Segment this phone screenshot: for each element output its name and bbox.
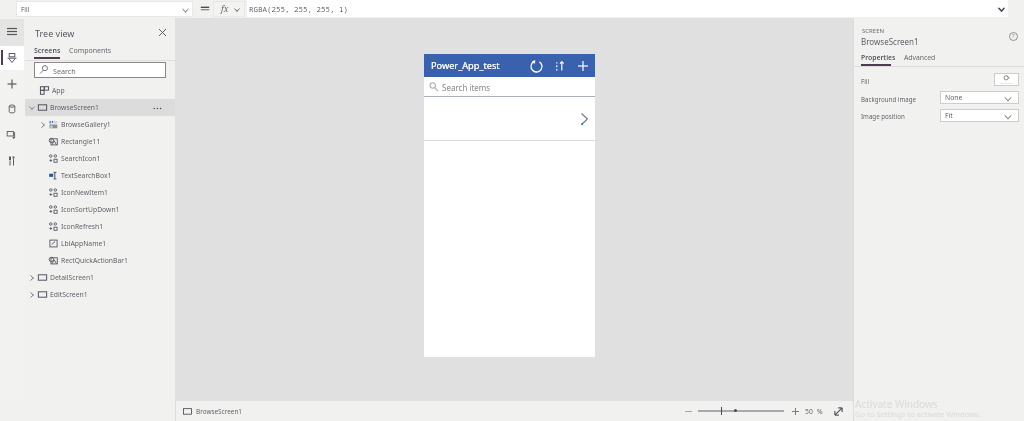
button[interactable]: Fit to window — [833, 406, 844, 417]
button[interactable]: Screens — [34, 46, 61, 56]
staticText: IconRefresh1 — [61, 222, 104, 231]
button[interactable]: Rectangle11 — [25, 133, 175, 150]
button[interactable]: None — [940, 91, 1019, 104]
staticText: Components — [69, 46, 112, 56]
staticText: EditScreen1 — [50, 290, 88, 299]
button[interactable]: Advanced — [904, 53, 936, 62]
button[interactable]: Menu — [0, 19, 24, 46]
button[interactable]: DetailScreen1 — [25, 269, 175, 286]
button[interactable]: TextSearchBox1 — [25, 167, 175, 184]
button[interactable]: LblAppName1 — [25, 235, 175, 252]
staticText: ? — [1012, 32, 1015, 40]
button[interactable]: Equals — [198, 1, 212, 15]
staticText: IconNewItem1 — [61, 188, 108, 197]
staticText: Screens — [34, 46, 61, 56]
button[interactable]: New item — [576, 59, 590, 73]
staticText: BrowseScreen1 — [196, 407, 242, 416]
button[interactable]: RGBA(255, 255, 255, 1) — [247, 0, 1008, 17]
button[interactable]: Help — [1007, 30, 1019, 42]
staticText: Rectangle11 — [61, 137, 101, 146]
button[interactable]: IconSortUpDown1 — [25, 201, 175, 218]
button[interactable]: Insert function — [213, 1, 245, 17]
staticText: IconSortUpDown1 — [61, 205, 120, 214]
staticText: 50 — [805, 407, 813, 416]
staticText: % — [817, 407, 823, 416]
button[interactable]: Search items — [424, 77, 595, 96]
button[interactable]: Variables — [0, 155, 24, 167]
button[interactable]: Refresh — [529, 59, 543, 73]
staticText: fx — [221, 3, 229, 15]
staticText: Search items — [442, 82, 491, 93]
button[interactable]: Properties — [861, 53, 896, 62]
button[interactable]: Search — [34, 62, 166, 78]
staticText: LblAppName1 — [61, 239, 107, 248]
staticText: SCREEN — [862, 27, 885, 35]
button[interactable]: Fill — [16, 1, 193, 17]
button[interactable]: SearchIcon1 — [25, 150, 175, 167]
button[interactable]: Fit — [940, 109, 1019, 122]
staticText: Background image — [861, 95, 916, 103]
button[interactable]: Data — [0, 103, 24, 115]
button[interactable]: Close — [155, 25, 169, 39]
staticText: Activate Windows — [855, 397, 938, 411]
button[interactable]: BrowseGallery1 — [25, 116, 175, 133]
staticText: Tree view — [35, 27, 75, 39]
staticText: SearchIcon1 — [61, 154, 101, 163]
staticText: Properties — [861, 53, 896, 62]
staticText: TextSearchBox1 — [61, 171, 112, 180]
button[interactable]: EditScreen1 — [25, 286, 175, 303]
staticText: Fill — [21, 5, 30, 14]
staticText: RectQuickActionBar1 — [61, 256, 128, 265]
staticText: Fill — [861, 77, 870, 85]
button[interactable] — [424, 97, 595, 140]
button[interactable]: Fill color — [994, 73, 1019, 86]
button[interactable]: IconRefresh1 — [25, 218, 175, 235]
button[interactable]: Zoom in — [790, 406, 801, 417]
button[interactable]: Insert — [0, 78, 24, 90]
button[interactable]: Zoom out — [683, 406, 694, 417]
staticText: BrowseScreen1 — [50, 103, 99, 112]
button[interactable]: Screens — [0, 46, 24, 70]
button[interactable]: BrowseScreen1 — [183, 404, 242, 418]
button[interactable]: Media — [0, 129, 24, 141]
button[interactable]: RectQuickActionBar1 — [25, 252, 175, 269]
staticText: Power_App_test — [431, 59, 500, 72]
button[interactable]: IconNewItem1 — [25, 184, 175, 201]
staticText: BrowseScreen1 — [861, 36, 919, 47]
button[interactable]: Components — [69, 46, 112, 56]
button[interactable]: BrowseScreen1 — [25, 99, 175, 116]
staticText: Advanced — [904, 53, 936, 62]
staticText: App — [52, 86, 65, 95]
staticText: Search — [53, 66, 76, 76]
staticText: Fit — [945, 111, 953, 120]
staticText: Go to Settings to activate Windows. — [855, 409, 981, 419]
staticText: Image position — [861, 112, 905, 120]
staticText: None — [945, 93, 963, 102]
staticText: DetailScreen1 — [50, 273, 94, 282]
staticText: BrowseGallery1 — [61, 120, 111, 129]
staticText: RGBA(255, 255, 255, 1) — [249, 4, 348, 14]
button[interactable]: Sort — [553, 59, 567, 73]
button[interactable]: App — [25, 82, 175, 99]
